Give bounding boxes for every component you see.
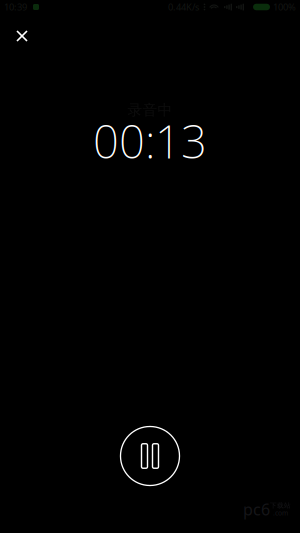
staticText: 10:39 [4, 1, 27, 13]
button[interactable]: Pause recording [120, 426, 180, 486]
staticText: 下载站 [270, 501, 291, 510]
button[interactable]: Close [0, 14, 44, 58]
staticText: 0.44K/s [168, 1, 199, 13]
staticText: pc6 [243, 499, 270, 520]
staticText: .com [273, 508, 288, 517]
staticText: 00:13 [93, 111, 207, 171]
staticText: 录音中 [127, 101, 172, 119]
staticText: 100% [273, 1, 296, 13]
